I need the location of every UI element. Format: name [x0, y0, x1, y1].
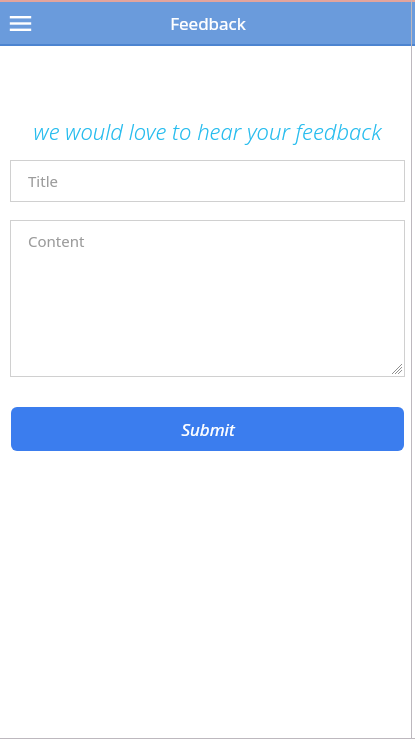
button[interactable]: Title [10, 160, 405, 202]
button[interactable]: Submit [11, 407, 404, 451]
button[interactable]: Content [10, 220, 405, 377]
staticText: Title [28, 171, 58, 191]
staticText: Submit [181, 418, 235, 441]
staticText: we would love to hear your feedback [8, 116, 407, 146]
staticText: Feedback [170, 12, 246, 35]
button[interactable]: Open navigation menu [5, 8, 36, 39]
staticText: Content [28, 231, 85, 251]
